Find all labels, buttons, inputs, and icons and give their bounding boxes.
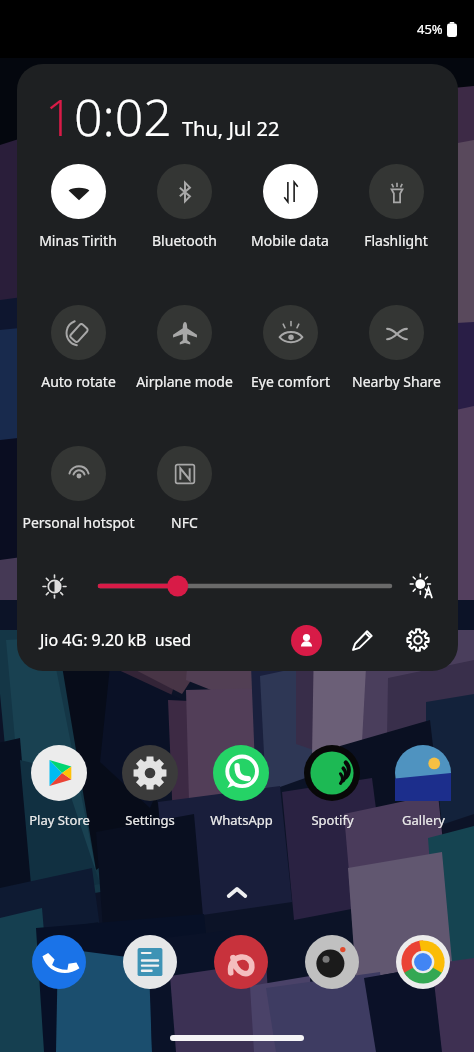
staticText: Bluetooth [152, 231, 217, 249]
staticText: WhatsApp [210, 811, 273, 829]
button[interactable]: Chrome [383, 935, 463, 989]
button[interactable]: Auto rotate [25, 305, 131, 390]
button[interactable]: Personal hotspot [25, 446, 131, 531]
button[interactable]: WhatsApp [201, 745, 281, 829]
button[interactable]: Phone [19, 935, 99, 989]
staticText: Airplane mode [136, 372, 233, 390]
staticText: 0:02 [74, 83, 172, 151]
button[interactable]: User account [291, 625, 322, 656]
button[interactable]: Nearby Share [343, 305, 449, 390]
staticText: Play Store [29, 811, 90, 829]
button[interactable]: Eye comfort [237, 305, 343, 390]
button[interactable]: Gallery [383, 745, 463, 829]
staticText: Minas Tirith [39, 231, 117, 249]
staticText: Personal hotspot [22, 513, 135, 531]
button[interactable]: Bluetooth [131, 164, 237, 249]
button[interactable]: Settings [402, 624, 434, 656]
staticText: Spotify [311, 811, 354, 829]
staticText: Auto rotate [41, 372, 116, 390]
staticText: Mobile data [251, 231, 329, 249]
button[interactable]: Edit tiles [346, 624, 378, 656]
staticText: 1 [45, 83, 74, 151]
button[interactable]: Airplane mode [131, 305, 237, 390]
button[interactable]: Open app drawer [0, 881, 474, 903]
button[interactable]: Camera [292, 935, 372, 989]
staticText: NFC [171, 513, 198, 531]
button[interactable]: NFC [131, 446, 237, 531]
button[interactable]: Flashlight [343, 164, 449, 249]
staticText: Gallery [402, 811, 445, 829]
staticText: Flashlight [364, 231, 428, 249]
staticText: Settings [125, 811, 175, 829]
button[interactable]: Spotify [292, 745, 372, 829]
staticText: Jio 4G: 9.20 kB used [40, 629, 192, 651]
button[interactable]: Messages [110, 935, 190, 989]
button[interactable]: Play Store [19, 745, 99, 829]
button[interactable]: Minas Tirith [25, 164, 131, 249]
button[interactable]: Settings [110, 745, 190, 829]
staticText: Nearby Share [352, 372, 441, 390]
staticText: Thu, Jul 22 [182, 115, 280, 142]
staticText: 45% [417, 20, 443, 38]
button[interactable]: Mobile data [237, 164, 343, 249]
button[interactable]: Authy [201, 935, 281, 989]
staticText: Eye comfort [251, 372, 330, 390]
